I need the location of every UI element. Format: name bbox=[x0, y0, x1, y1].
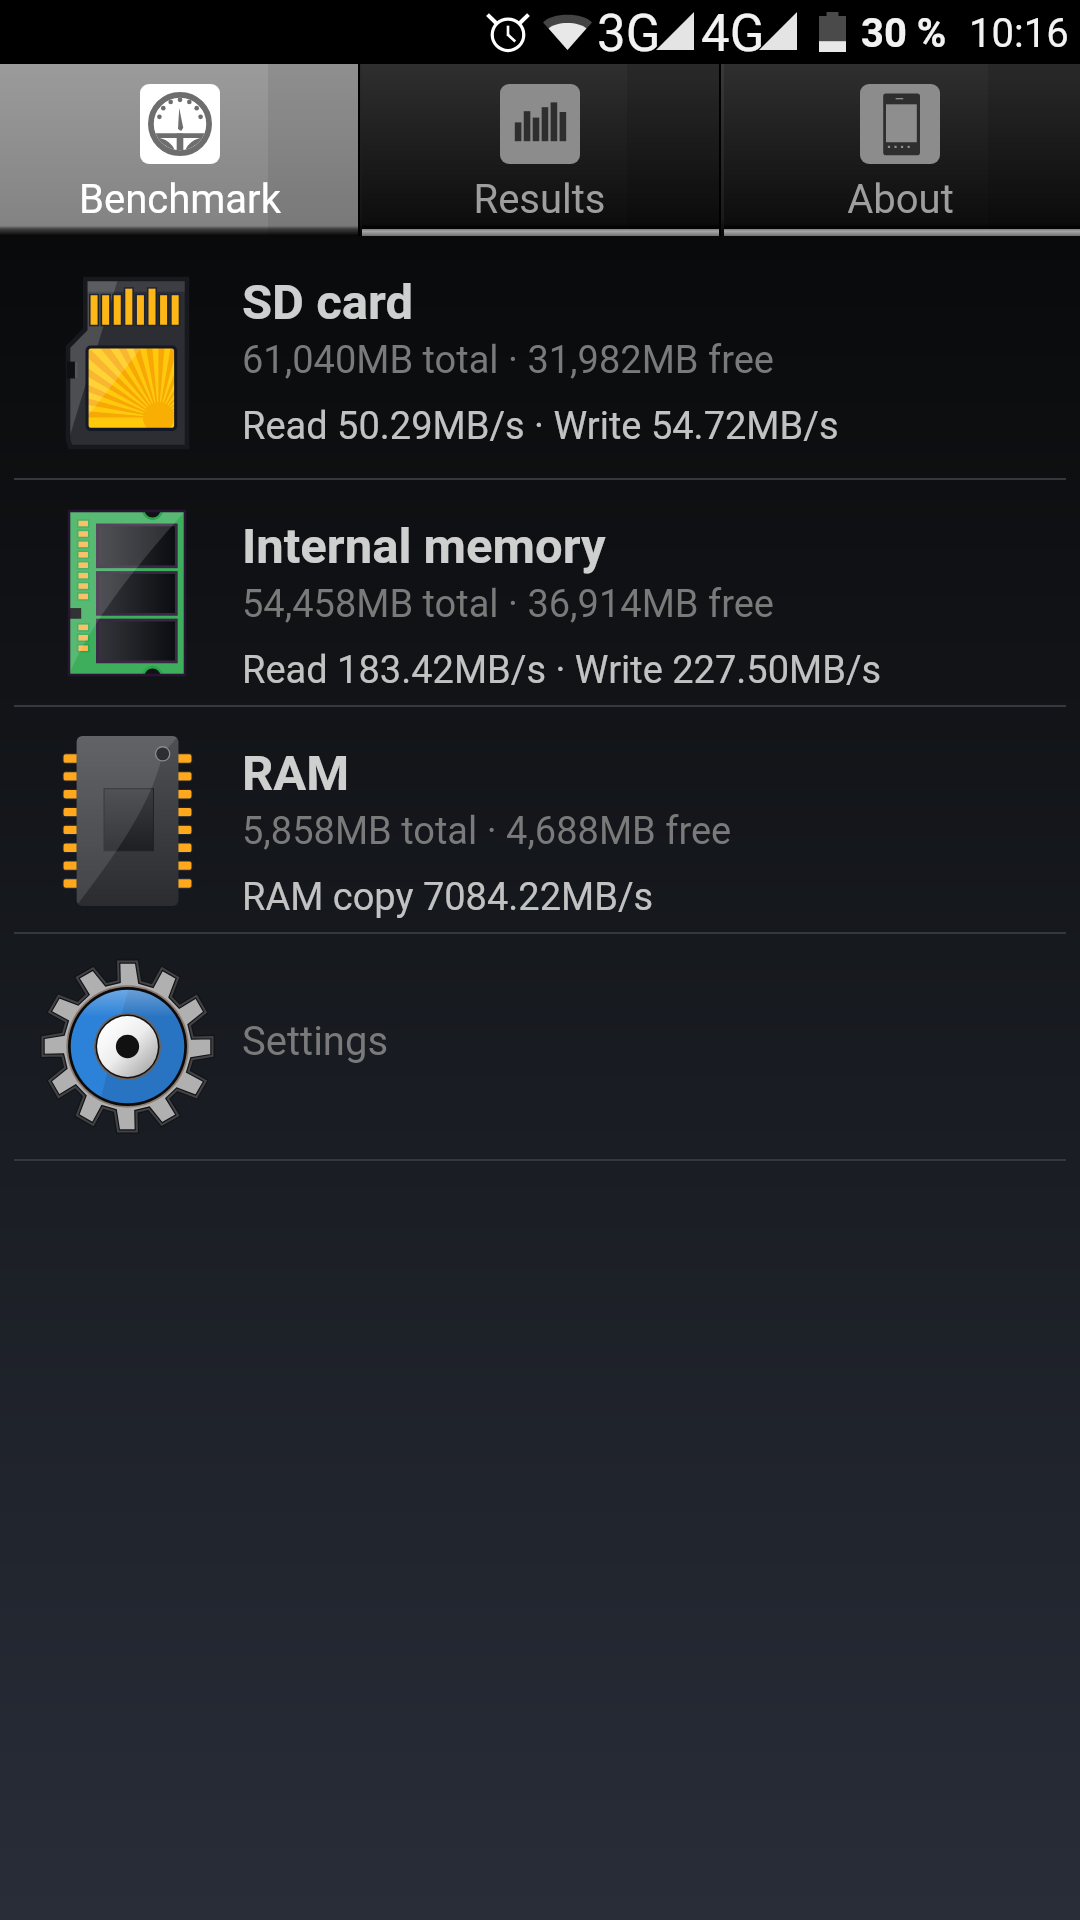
staticText: SD card bbox=[242, 274, 414, 331]
button[interactable]: Benchmark bbox=[0, 64, 359, 236]
button[interactable]: Internal memory bbox=[0, 480, 1080, 705]
staticText: 10:16 bbox=[969, 10, 1069, 57]
staticText: RAM copy 7084.22MB/s bbox=[242, 875, 654, 920]
button[interactable]: About bbox=[720, 64, 1080, 236]
button[interactable]: SD card bbox=[0, 236, 1080, 478]
staticText: About bbox=[847, 176, 954, 223]
staticText: 30 % bbox=[861, 10, 947, 57]
button[interactable]: Settings bbox=[0, 934, 1080, 1159]
staticText: 54,458MB total · 36,914MB free bbox=[242, 582, 774, 627]
staticText: 3G bbox=[597, 4, 661, 64]
button[interactable]: Results bbox=[359, 64, 720, 236]
staticText: Read 183.42MB/s · Write 227.50MB/s bbox=[242, 648, 882, 693]
staticText: 4G bbox=[701, 4, 765, 64]
staticText: Read 50.29MB/s · Write 54.72MB/s bbox=[242, 404, 839, 449]
staticText: Benchmark bbox=[79, 176, 281, 223]
staticText: 5,858MB total · 4,688MB free bbox=[242, 809, 732, 854]
staticText: Internal memory bbox=[242, 518, 606, 575]
staticText: RAM bbox=[242, 745, 350, 802]
staticText: Settings bbox=[242, 1018, 389, 1065]
staticText: 61,040MB total · 31,982MB free bbox=[242, 338, 774, 383]
staticText: Results bbox=[473, 176, 606, 223]
button[interactable]: RAM bbox=[0, 707, 1080, 932]
